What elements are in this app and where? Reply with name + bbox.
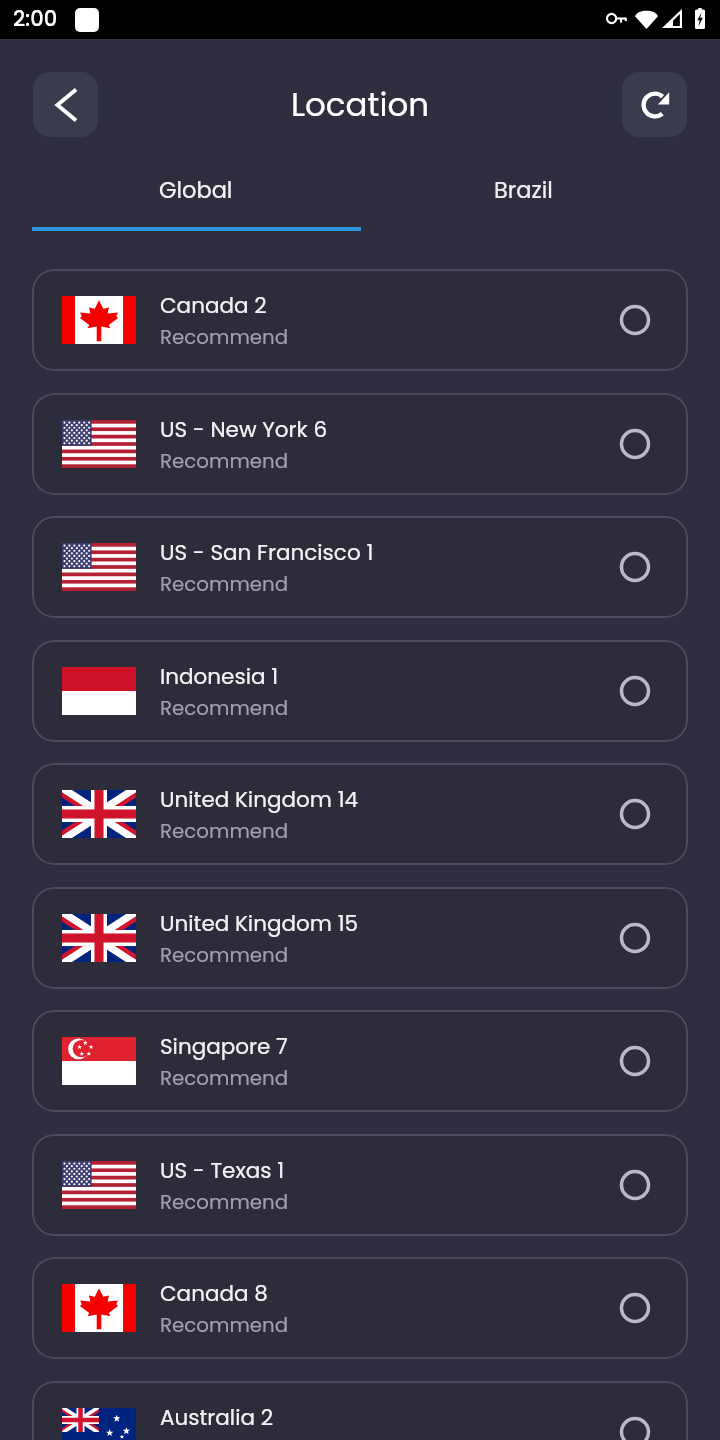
- button[interactable]: Brazil: [359, 149, 687, 229]
- staticText: 2:00: [13, 4, 58, 33]
- button[interactable]: Global: [32, 149, 359, 229]
- staticText: Australia 2: [160, 1402, 274, 1432]
- staticText: Canada 8: [160, 1278, 268, 1308]
- button[interactable]: US - New York 6: [32, 393, 688, 495]
- staticText: Recommend: [160, 570, 289, 598]
- staticText: Location: [291, 82, 429, 128]
- staticText: Recommend: [160, 694, 289, 722]
- staticText: Recommend: [160, 447, 289, 475]
- staticText: Global: [159, 174, 233, 205]
- staticText: Recommend: [160, 323, 289, 351]
- staticText: United Kingdom 15: [160, 908, 359, 938]
- staticText: Brazil: [494, 174, 553, 205]
- staticText: Recommend: [160, 1311, 289, 1339]
- button[interactable]: Canada 2: [32, 269, 688, 371]
- button[interactable]: United Kingdom 14: [32, 763, 688, 865]
- button[interactable]: Canada 8: [32, 1257, 688, 1359]
- staticText: Indonesia 1: [160, 661, 279, 691]
- staticText: Recommend: [160, 817, 289, 845]
- button[interactable]: Back: [33, 72, 98, 137]
- button[interactable]: United Kingdom 15: [32, 887, 688, 989]
- staticText: Singapore 7: [160, 1031, 288, 1061]
- button[interactable]: US - San Francisco 1: [32, 516, 688, 618]
- staticText: US - New York 6: [160, 414, 328, 444]
- staticText: Canada 2: [160, 290, 267, 320]
- staticText: Recommend: [160, 1064, 289, 1092]
- staticText: Recommend: [160, 941, 289, 969]
- button[interactable]: Singapore 7: [32, 1010, 688, 1112]
- staticText: US - Texas 1: [160, 1155, 285, 1185]
- staticText: US - San Francisco 1: [160, 537, 374, 567]
- staticText: Recommend: [160, 1188, 289, 1216]
- button[interactable]: Australia 2: [32, 1381, 688, 1440]
- staticText: United Kingdom 14: [160, 784, 359, 814]
- button[interactable]: Indonesia 1: [32, 640, 688, 742]
- button[interactable]: Refresh: [622, 72, 687, 137]
- button[interactable]: US - Texas 1: [32, 1134, 688, 1236]
